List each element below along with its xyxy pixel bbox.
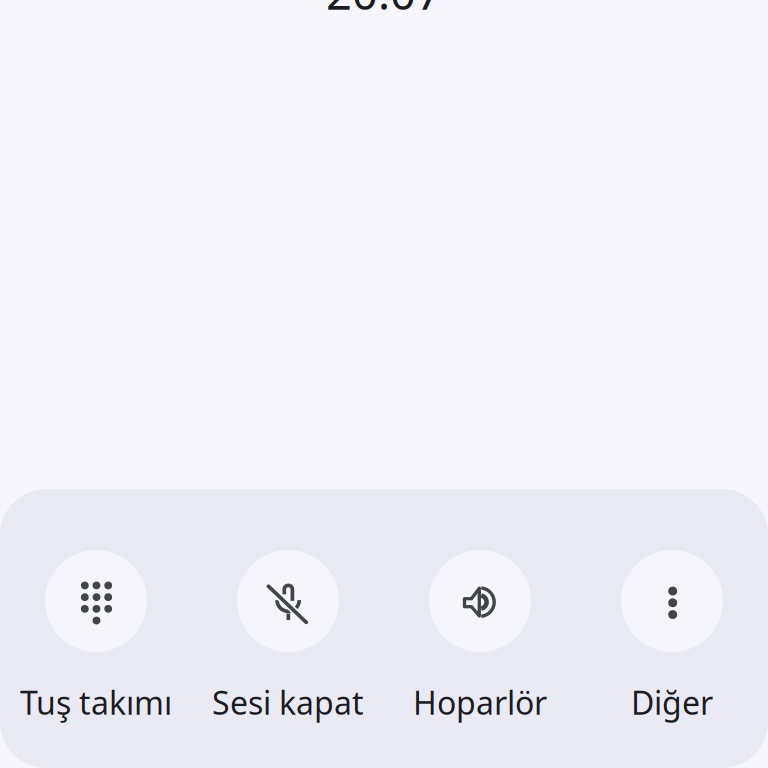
button[interactable]: Hoparlör	[384, 550, 576, 723]
staticText: Hoparlör	[413, 681, 547, 723]
staticText: 20:07	[326, 0, 442, 22]
button[interactable]: Diğer	[576, 550, 768, 723]
button[interactable]: Tuş takımı	[0, 550, 192, 723]
staticText: Diğer	[631, 681, 713, 723]
button[interactable]: Sesi kapat	[192, 550, 384, 723]
staticText: Sesi kapat	[212, 681, 364, 723]
staticText: Tuş takımı	[20, 681, 172, 723]
